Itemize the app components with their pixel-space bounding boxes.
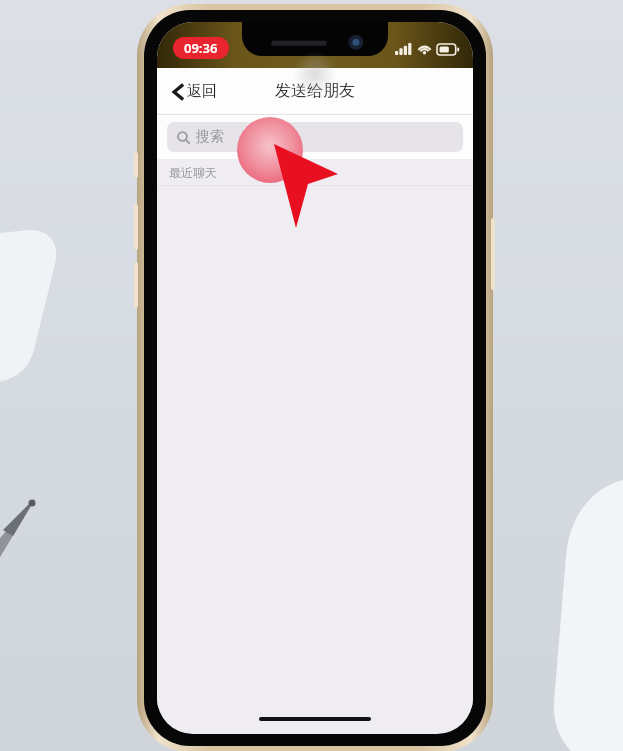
other: Tap pointer	[234, 116, 330, 212]
staticText: 最近聊天	[169, 165, 217, 180]
staticText: 返回	[187, 82, 217, 101]
button[interactable]: 搜索	[167, 122, 463, 152]
staticText: 搜索	[196, 128, 224, 146]
button[interactable]: 返回	[165, 76, 225, 107]
staticText: 09:36	[184, 39, 218, 57]
staticText: 发送给朋友	[275, 81, 355, 101]
